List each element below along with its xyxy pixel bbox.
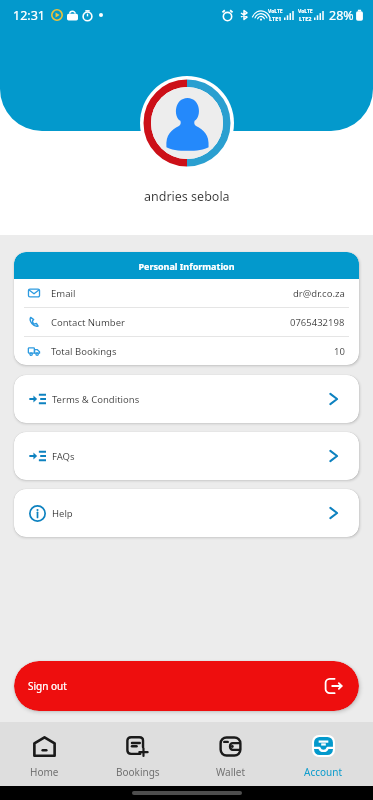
- staticText: VoLTE: [268, 8, 283, 15]
- button[interactable]: Wallet: [184, 722, 277, 786]
- staticText: Total Bookings: [51, 345, 117, 358]
- button[interactable]: Terms & Conditions: [14, 375, 359, 423]
- button[interactable]: Account: [277, 722, 370, 786]
- staticText: Personal Information: [138, 260, 235, 272]
- staticText: 28%: [329, 7, 354, 24]
- staticText: dr@dr.co.za: [293, 287, 345, 300]
- staticText: Wallet: [216, 765, 246, 779]
- staticText: Home: [30, 765, 59, 779]
- button[interactable]: Home: [0, 722, 91, 786]
- staticText: LTE1: [269, 15, 282, 22]
- staticText: 12:31: [13, 7, 45, 24]
- staticText: Help: [52, 507, 73, 520]
- staticText: LTE2: [299, 15, 312, 22]
- staticText: VoLTE: [298, 8, 313, 15]
- button[interactable]: Total Bookings: [14, 337, 359, 365]
- staticText: Email: [51, 287, 76, 300]
- staticText: Bookings: [116, 765, 160, 779]
- button[interactable]: Help: [14, 489, 359, 537]
- staticText: Terms & Conditions: [52, 393, 140, 406]
- button[interactable]: Bookings: [91, 722, 184, 786]
- staticText: andries sebola: [144, 188, 230, 205]
- staticText: Contact Number: [51, 316, 125, 329]
- staticText: Account: [304, 765, 343, 779]
- button[interactable]: Email: [14, 279, 359, 307]
- button[interactable]: Contact Number: [14, 308, 359, 336]
- staticText: 0765432198: [290, 316, 345, 329]
- button[interactable]: Sign out: [14, 661, 359, 711]
- staticText: 10: [334, 345, 345, 358]
- staticText: FAQs: [52, 450, 75, 463]
- button[interactable]: FAQs: [14, 432, 359, 480]
- staticText: Sign out: [28, 679, 67, 693]
